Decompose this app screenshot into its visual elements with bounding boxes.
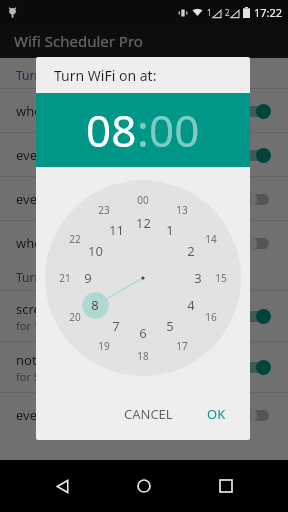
button[interactable]: 14 — [201, 229, 221, 249]
button[interactable]: OK — [197, 399, 236, 429]
button[interactable]: 21 — [55, 268, 75, 288]
button[interactable]: 3 — [187, 267, 209, 289]
staticText: 17:22 — [254, 5, 283, 20]
button[interactable]: 00 — [133, 190, 153, 210]
button[interactable]: Enabled — [242, 359, 272, 375]
staticText: 12 — [136, 214, 151, 232]
staticText: 23 — [98, 203, 110, 217]
staticText: 00 — [137, 193, 149, 207]
staticText: Wifi Scheduler Pro — [14, 31, 143, 51]
staticText: 1 — [207, 7, 212, 18]
staticText: Turn WiFi on at: — [54, 66, 157, 85]
staticText: 2 — [225, 7, 230, 18]
button[interactable]: 23 — [94, 200, 114, 220]
staticText: for 10 minutes — [16, 318, 92, 333]
button[interactable]: 20 — [65, 307, 85, 327]
button[interactable]: everyday at 22:00 — [0, 393, 288, 436]
button[interactable]: 4 — [180, 294, 202, 316]
staticText: 17 — [176, 339, 188, 353]
button[interactable]: 10 — [84, 240, 106, 262]
staticText: 17:22 — [254, 5, 283, 20]
button[interactable]: Enabled — [242, 147, 272, 163]
staticText: 1 — [166, 221, 174, 239]
staticText: 4 — [187, 296, 195, 314]
staticText: 16 — [205, 310, 217, 324]
staticText: 11 — [109, 221, 124, 239]
button[interactable]: Enabled — [242, 103, 272, 119]
staticText: 20 — [69, 310, 81, 324]
button[interactable]: 15 — [211, 268, 231, 288]
staticText: not connected — [16, 351, 104, 369]
staticText: 22 — [69, 232, 81, 246]
staticText: 7 — [112, 317, 120, 335]
button[interactable]: 9 — [77, 267, 99, 289]
button[interactable]: Back — [42, 466, 82, 506]
button[interactable]: 6 — [132, 322, 154, 344]
button[interactable]: 11 — [105, 219, 127, 241]
staticText: OK — [207, 405, 226, 423]
button[interactable]: Disabled — [242, 235, 272, 251]
button[interactable]: Disabled — [242, 407, 272, 423]
staticText: 08 — [86, 100, 137, 160]
button[interactable]: not connected — [0, 342, 288, 392]
staticText: 9 — [84, 269, 92, 287]
button[interactable]: 16 — [201, 307, 221, 327]
staticText: 6 — [139, 324, 147, 342]
staticText: everyday at 08:00 — [16, 146, 242, 164]
staticText: 10 — [88, 242, 103, 260]
staticText: : — [137, 100, 149, 160]
button[interactable]: 00 — [149, 100, 200, 160]
staticText: 5 — [166, 317, 174, 335]
staticText: 21 — [59, 271, 71, 285]
button[interactable]: 12 — [132, 212, 154, 234]
staticText: everyday at 17:30 — [16, 190, 242, 208]
staticText: 3 — [194, 269, 202, 287]
staticText: everyday at 22:00 — [16, 406, 242, 424]
button[interactable]: everyday at 08:00 — [0, 133, 288, 176]
staticText: 18 — [137, 349, 149, 363]
button[interactable]: CANCEL — [114, 399, 183, 429]
button[interactable]: screen is off — [0, 291, 288, 341]
button[interactable]: when the screen turns on — [0, 89, 288, 132]
staticText: 2 — [187, 242, 195, 260]
staticText: 1 — [207, 7, 212, 18]
button[interactable]: 13 — [172, 200, 192, 220]
staticText: 19 — [98, 339, 110, 353]
button[interactable]: Home — [124, 466, 164, 506]
staticText: CANCEL — [124, 405, 173, 423]
button[interactable]: Disabled — [242, 191, 272, 207]
button[interactable]: 8 — [84, 294, 106, 316]
staticText: Turn WiFi on — [16, 67, 87, 83]
staticText: 00 — [149, 100, 200, 160]
button[interactable]: 17 — [172, 336, 192, 356]
button[interactable]: 18 — [133, 346, 153, 366]
button[interactable]: 7 — [105, 315, 127, 337]
staticText: for 5 minutes — [16, 369, 86, 384]
button[interactable]: 22 — [65, 229, 85, 249]
button[interactable]: 08 — [86, 100, 137, 160]
staticText: when charging starts — [16, 234, 242, 252]
staticText: 2 — [225, 7, 230, 18]
button[interactable]: 1 — [159, 219, 181, 241]
staticText: Turn WiFi off — [16, 269, 88, 285]
button[interactable]: Recents — [206, 466, 246, 506]
staticText: 15 — [215, 271, 227, 285]
staticText: 14 — [205, 232, 217, 246]
staticText: when the screen turns on — [16, 102, 242, 120]
button[interactable]: 5 — [159, 315, 181, 337]
button[interactable]: 19 — [94, 336, 114, 356]
staticText: 13 — [176, 203, 188, 217]
button[interactable]: when charging starts — [0, 221, 288, 264]
button[interactable]: 2 — [180, 240, 202, 262]
button[interactable]: Enabled — [242, 308, 272, 324]
staticText: screen is off — [16, 300, 90, 318]
staticText: 8 — [91, 296, 99, 314]
button[interactable]: everyday at 17:30 — [0, 177, 288, 220]
